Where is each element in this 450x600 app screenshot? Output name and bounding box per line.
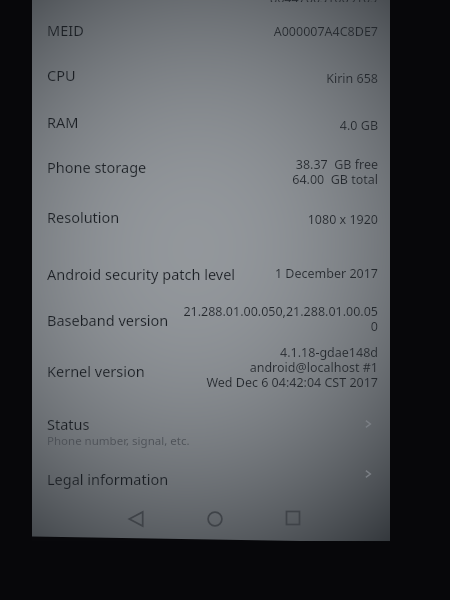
button[interactable] — [32, 404, 390, 454]
staticText: 1080 x 1920 — [307, 211, 378, 228]
button[interactable] — [32, 456, 390, 500]
button[interactable] — [32, 194, 390, 240]
staticText: 0 — [370, 318, 378, 335]
staticText: 64.00 GB total — [292, 171, 378, 188]
button[interactable] — [32, 146, 390, 194]
button[interactable] — [32, 252, 390, 298]
staticText: Phone number, signal, etc. — [47, 433, 190, 449]
button[interactable]: Recents — [277, 502, 309, 534]
staticText: Baseband version — [47, 310, 169, 330]
staticText: Resolution — [47, 207, 120, 227]
staticText: RAM — [47, 112, 79, 132]
staticText: Legal information — [47, 469, 169, 489]
button[interactable] — [32, 53, 390, 100]
staticText: 864476031669105 — [270, 0, 378, 2]
staticText: Phone storage — [47, 157, 147, 177]
staticText: android@localhost #1 — [249, 359, 378, 376]
staticText: Kirin 658 — [326, 70, 378, 87]
button[interactable] — [32, 340, 390, 398]
button[interactable] — [32, 298, 390, 340]
staticText: MEID — [47, 20, 84, 40]
button[interactable]: Home — [199, 503, 231, 535]
button[interactable]: Back — [120, 503, 152, 535]
staticText: 4.0 GB — [339, 117, 378, 134]
staticText: Wed Dec 6 04:42:04 CST 2017 — [206, 374, 378, 391]
staticText: 21.288.01.00.050,21.288.01.00.05 — [183, 303, 378, 320]
staticText: Status — [47, 414, 90, 434]
button[interactable] — [32, 6, 390, 53]
staticText: Kernel version — [47, 361, 145, 381]
button[interactable] — [32, 100, 390, 146]
staticText: 1 December 2017 — [274, 265, 378, 282]
staticText: CPU — [47, 65, 76, 85]
staticText: Android security patch level — [47, 264, 236, 284]
staticText: 4.1.18-gdae148d — [280, 344, 378, 361]
staticText: 38.37 GB free — [295, 156, 378, 173]
staticText: A000007A4C8DE7 — [273, 23, 378, 40]
